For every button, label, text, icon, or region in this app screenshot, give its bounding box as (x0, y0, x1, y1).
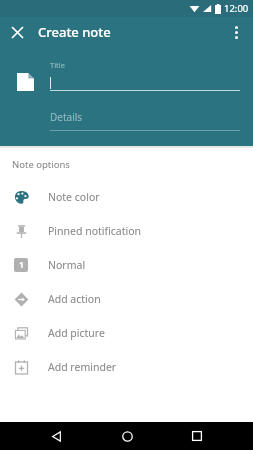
staticText: Note options (12, 158, 70, 171)
button[interactable]: Back (41, 422, 71, 450)
staticText: 1 (19, 259, 24, 271)
button[interactable]: Home (112, 422, 142, 450)
staticText: Add reminder (48, 360, 117, 374)
staticText: Details (50, 110, 83, 124)
button[interactable]: More options (223, 19, 249, 45)
staticText: Add picture (48, 326, 105, 340)
staticText: Note color (48, 190, 100, 204)
button[interactable]: Recent apps (182, 422, 212, 450)
staticText: Title (50, 60, 65, 70)
button[interactable]: Add action (0, 282, 253, 316)
staticText: Add action (48, 292, 101, 306)
button[interactable]: Add reminder (0, 350, 253, 384)
button[interactable]: Pinned notification (0, 214, 253, 248)
button[interactable]: Add picture (0, 316, 253, 350)
button[interactable]: 1 (0, 248, 253, 282)
staticText: 12:00 (224, 2, 249, 15)
button[interactable]: Close (4, 19, 30, 45)
staticText: Normal (48, 258, 86, 272)
staticText: Create note (38, 23, 111, 41)
staticText: Pinned notification (48, 224, 142, 238)
button[interactable]: Note color (0, 180, 253, 214)
